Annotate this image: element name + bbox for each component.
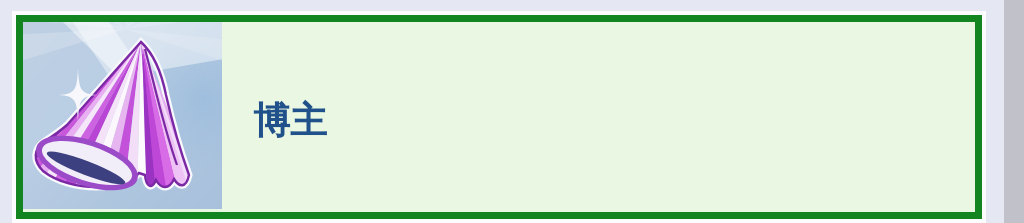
staticText: 博主 (253, 97, 327, 144)
other: Party hat (23, 22, 222, 209)
button[interactable]: Party hat (23, 22, 975, 212)
